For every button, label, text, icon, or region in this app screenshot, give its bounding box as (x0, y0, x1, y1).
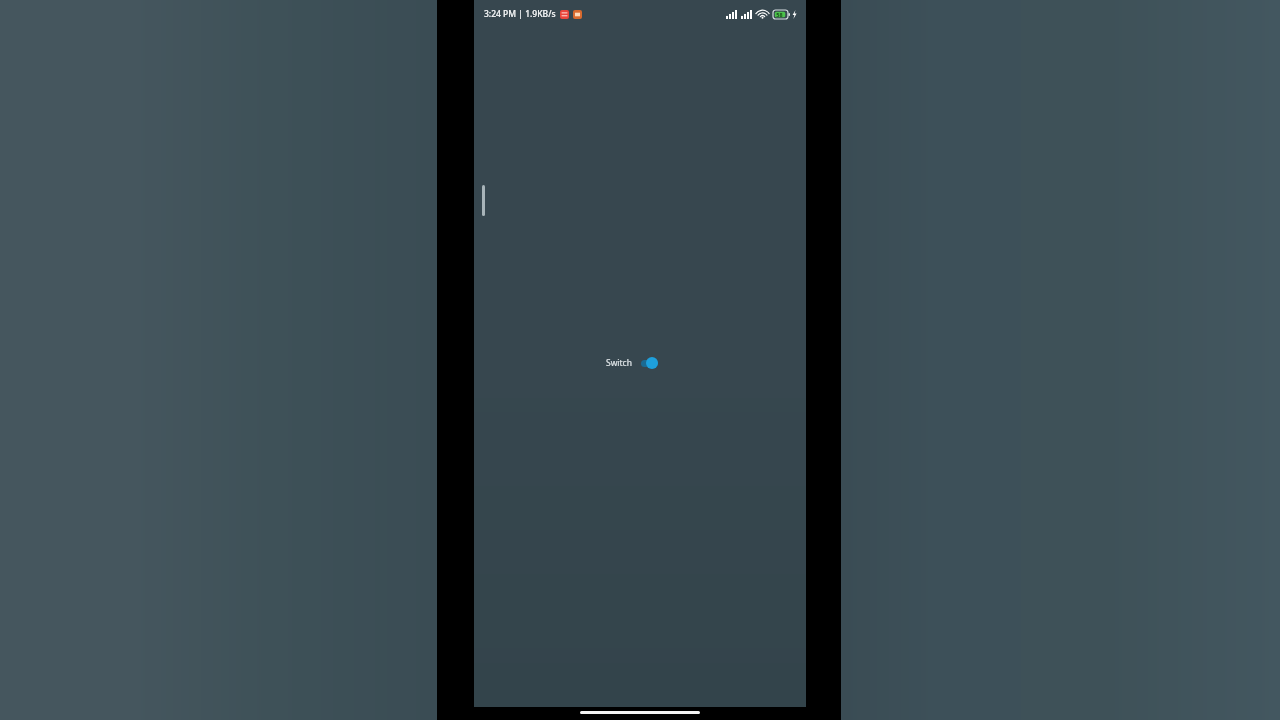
other: Home gesture bar (580, 711, 700, 714)
button[interactable]: Switch (606, 355, 661, 371)
staticText: 58 (776, 11, 783, 18)
staticText: 3:24 PM | 1.9KB/s (484, 8, 556, 20)
other: Switch toggle, on (639, 355, 661, 371)
staticText: Switch (606, 357, 632, 369)
